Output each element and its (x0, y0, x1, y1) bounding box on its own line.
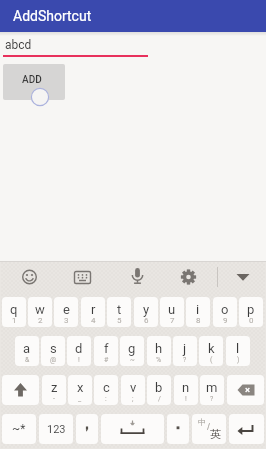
button[interactable]: q (2, 297, 26, 327)
staticText: x (77, 380, 84, 395)
button[interactable]: ~* (2, 414, 36, 444)
button[interactable]: o (213, 297, 237, 327)
button[interactable] (229, 414, 264, 444)
button[interactable] (124, 263, 151, 290)
staticText: q (10, 302, 18, 317)
staticText: h (155, 341, 163, 356)
button[interactable]: k (199, 336, 223, 366)
staticText: ( (210, 356, 213, 364)
staticText: c (103, 380, 110, 395)
staticText: y (143, 302, 150, 317)
button[interactable] (227, 375, 264, 405)
button[interactable] (16, 264, 43, 290)
button[interactable]: w (28, 297, 52, 327)
staticText: 5 (117, 316, 122, 325)
staticText: # (104, 356, 109, 364)
staticText: v (130, 380, 137, 395)
staticText: ? (210, 395, 214, 403)
staticText: 2 (38, 316, 43, 325)
button[interactable]: l (226, 336, 250, 366)
button[interactable]: i (186, 297, 210, 327)
button[interactable]: e (54, 297, 78, 327)
staticText: s (50, 341, 57, 356)
button[interactable]: y (134, 297, 158, 327)
button[interactable] (101, 414, 164, 444)
button[interactable]: g (120, 336, 144, 366)
button[interactable]: p (239, 297, 263, 327)
staticText: ! (185, 395, 187, 403)
button[interactable]: z (42, 375, 66, 405)
staticText: 123 (47, 423, 66, 436)
staticText: e (63, 302, 70, 317)
button[interactable]: 123 (39, 414, 73, 444)
button[interactable]: h (147, 336, 171, 366)
staticText: i (196, 302, 200, 317)
button[interactable] (76, 414, 98, 444)
staticText: k (208, 341, 215, 356)
staticText: b (155, 380, 163, 395)
button[interactable]: r (81, 297, 105, 327)
staticText: 6 (144, 316, 149, 325)
staticText: ~* (12, 422, 26, 436)
staticText: % (156, 356, 162, 364)
staticText: ? (183, 356, 187, 364)
button[interactable] (230, 264, 256, 290)
staticText: AddShortcut (13, 8, 92, 24)
button[interactable]: f (94, 336, 118, 366)
staticText: - (53, 395, 55, 403)
staticText: @ (50, 356, 57, 364)
staticText: ) (237, 356, 240, 364)
staticText: 英 (210, 427, 221, 441)
button[interactable]: c (94, 375, 118, 405)
button[interactable]: v (121, 375, 145, 405)
staticText: 3 (64, 316, 69, 325)
staticText: ; (132, 395, 134, 403)
button[interactable]: j (173, 336, 197, 366)
button[interactable] (69, 264, 96, 290)
staticText: u (168, 302, 176, 317)
staticText: o (221, 302, 229, 317)
staticText: p (247, 302, 255, 317)
button[interactable]: x (68, 375, 92, 405)
button[interactable]: d (67, 336, 91, 366)
staticText: f (104, 341, 109, 356)
staticText: 中 (198, 417, 206, 427)
staticText: d (75, 341, 83, 356)
button[interactable]: m (200, 375, 224, 405)
staticText: : (105, 395, 107, 403)
staticText: ADD (22, 74, 42, 86)
button[interactable]: t (107, 297, 131, 327)
button[interactable]: n (174, 375, 198, 405)
staticText: g (128, 341, 136, 356)
staticText: _ (78, 395, 82, 403)
staticText: / (158, 395, 161, 403)
staticText: 4 (91, 316, 96, 325)
staticText: m (206, 380, 218, 395)
button[interactable]: 中 (192, 414, 226, 444)
staticText: 0 (249, 316, 254, 325)
staticText: ! (78, 356, 80, 364)
staticText: r (91, 302, 96, 317)
staticText: j (183, 341, 187, 356)
button[interactable]: ADD (3, 64, 65, 100)
staticText: w (35, 302, 45, 317)
staticText: n (182, 380, 190, 395)
staticText: 9 (223, 316, 228, 325)
button[interactable]: s (41, 336, 65, 366)
button[interactable]: a (15, 336, 39, 366)
button[interactable]: b (147, 375, 171, 405)
button[interactable] (2, 375, 39, 405)
staticText: l (236, 341, 240, 356)
staticText: a (23, 341, 31, 356)
staticText: 1 (12, 316, 17, 325)
staticText: 8 (196, 316, 201, 325)
staticText: abcd (5, 38, 32, 52)
staticText: t (117, 302, 122, 317)
staticText: ~ (130, 356, 135, 364)
button[interactable] (175, 264, 202, 290)
staticText: / (207, 421, 210, 432)
button[interactable] (167, 414, 189, 444)
staticText: 7 (170, 316, 175, 325)
button[interactable]: u (160, 297, 184, 327)
staticText: z (51, 380, 58, 395)
